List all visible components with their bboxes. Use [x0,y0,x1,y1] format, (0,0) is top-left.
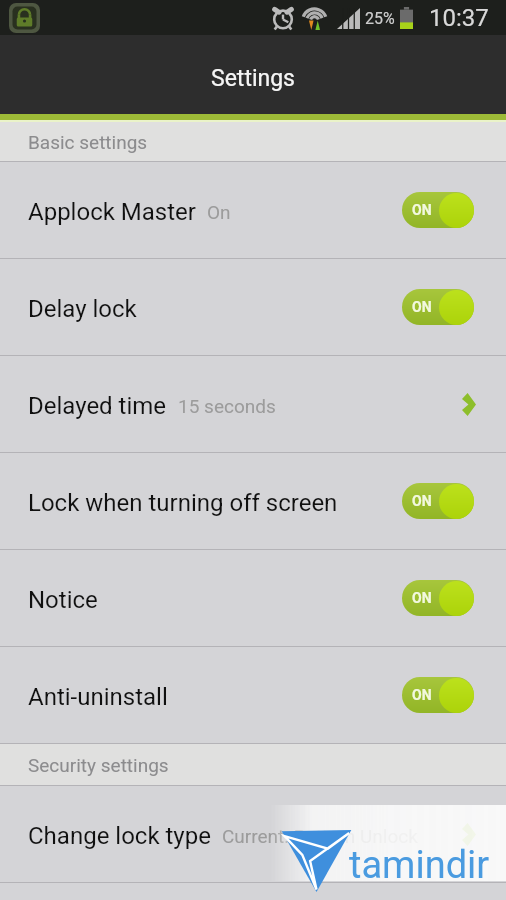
staticText: ON [412,299,432,315]
staticText: Anti-uninstall [28,683,168,711]
staticText: Settings [211,65,295,92]
staticText: Delayed time [28,392,167,420]
staticText: Lock when turning off screen [28,489,338,517]
button[interactable]: Change lock type [0,786,506,882]
staticText: Applock Master [28,198,196,226]
staticText: Delay lock [28,295,137,323]
staticText: Notice [28,586,98,614]
staticText: 25% [365,9,395,28]
button[interactable]: Applock Master [0,162,506,258]
other: Open [462,393,476,416]
staticText: On [207,201,231,223]
staticText: Change lock type [28,822,211,850]
staticText: tamindir [349,843,490,888]
button[interactable] [0,883,506,900]
button[interactable]: Toggle [402,580,474,616]
button[interactable]: Toggle [402,192,474,228]
staticText: 10:37 [429,4,489,32]
button[interactable]: Toggle [402,677,474,713]
staticText: ON [412,493,432,509]
staticText: Basic settings [28,131,148,153]
staticText: ON [412,590,432,606]
staticText: Current: Pattern Unlock [222,825,418,847]
button[interactable]: Toggle [402,483,474,519]
staticText: ON [412,202,432,218]
button[interactable]: Delayed time [0,356,506,452]
button[interactable]: Lock when turning off screen [0,453,506,549]
button[interactable]: Toggle [402,289,474,325]
button[interactable]: Notice [0,550,506,646]
staticText: ON [412,687,432,703]
staticText: 15 seconds [178,395,276,417]
staticText: Security settings [28,754,169,776]
button[interactable]: Anti-uninstall [0,647,506,743]
other: Open [462,823,476,846]
button[interactable]: Delay lock [0,259,506,355]
